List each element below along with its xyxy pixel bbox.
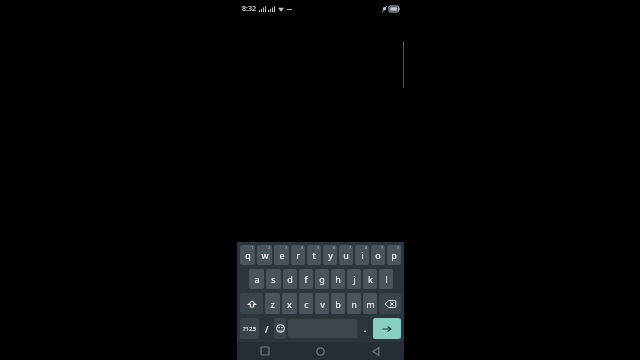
button[interactable]: j xyxy=(347,269,361,289)
button[interactable]: Recent apps xyxy=(237,342,292,360)
staticText: t xyxy=(312,249,316,261)
staticText: g xyxy=(319,273,325,285)
button[interactable]: 3 xyxy=(274,245,289,265)
staticText: 1 xyxy=(251,245,254,250)
button[interactable]: Emoji xyxy=(274,318,286,339)
staticText: u xyxy=(343,249,349,261)
staticText: w xyxy=(261,249,269,261)
staticText: ?123 xyxy=(243,325,256,333)
button[interactable]: Home xyxy=(292,342,348,360)
button[interactable]: k xyxy=(363,269,377,289)
staticText: s xyxy=(271,273,276,285)
button[interactable]: 0 xyxy=(387,245,401,265)
button[interactable]: 9 xyxy=(371,245,385,265)
staticText: z xyxy=(270,298,275,310)
staticText: b xyxy=(335,298,341,310)
staticText: 8:32 xyxy=(242,4,256,14)
button[interactable]: 6 xyxy=(323,245,337,265)
staticText: n xyxy=(351,298,357,310)
staticText: 4 xyxy=(301,245,304,250)
button[interactable]: v xyxy=(315,293,329,314)
button[interactable]: Backspace xyxy=(379,293,401,314)
staticText: a xyxy=(254,273,260,285)
staticText: p xyxy=(391,249,397,261)
button[interactable]: h xyxy=(331,269,345,289)
staticText: r xyxy=(296,249,300,261)
button[interactable]: Symbols xyxy=(240,318,259,339)
staticText: e xyxy=(279,249,285,261)
button[interactable]: 4 xyxy=(291,245,305,265)
staticText: y xyxy=(328,249,333,261)
staticText: j xyxy=(353,273,356,285)
button[interactable]: s xyxy=(266,269,281,289)
button[interactable]: 8 xyxy=(355,245,369,265)
button[interactable]: Slash xyxy=(261,318,272,339)
staticText: m xyxy=(366,298,375,310)
staticText: o xyxy=(375,249,381,261)
button[interactable]: Shift xyxy=(240,293,263,314)
staticText: 0 xyxy=(397,245,400,250)
staticText: 6 xyxy=(333,245,336,250)
button[interactable]: 1 xyxy=(240,245,255,265)
staticText: 9 xyxy=(381,245,384,250)
staticText: h xyxy=(335,273,341,285)
staticText: k xyxy=(368,273,373,285)
button[interactable]: 2 xyxy=(257,245,272,265)
staticText: 3 xyxy=(285,245,288,250)
staticText: q xyxy=(245,249,251,261)
button[interactable]: l xyxy=(379,269,393,289)
staticText: 5 xyxy=(317,245,320,250)
staticText: 8 xyxy=(365,245,368,250)
button[interactable]: 5 xyxy=(307,245,321,265)
button[interactable]: f xyxy=(299,269,313,289)
button[interactable]: z xyxy=(265,293,280,314)
staticText: / xyxy=(265,323,269,335)
button[interactable]: d xyxy=(283,269,297,289)
staticText: f xyxy=(304,273,308,285)
staticText: d xyxy=(287,273,293,285)
button[interactable]: a xyxy=(249,269,264,289)
button[interactable]: m xyxy=(363,293,377,314)
staticText: x xyxy=(287,298,292,310)
staticText: . xyxy=(364,323,367,334)
button[interactable]: 7 xyxy=(339,245,353,265)
button[interactable]: x xyxy=(282,293,297,314)
button[interactable]: n xyxy=(347,293,361,314)
button[interactable]: b xyxy=(331,293,345,314)
staticText: 7 xyxy=(349,245,352,250)
button[interactable]: Send xyxy=(373,318,401,339)
button[interactable]: c xyxy=(299,293,313,314)
button[interactable]: Back xyxy=(348,342,404,360)
staticText: l xyxy=(385,273,388,285)
staticText: i xyxy=(361,249,364,261)
staticText: 2 xyxy=(268,245,271,250)
button[interactable]: g xyxy=(315,269,329,289)
staticText: c xyxy=(304,298,309,310)
staticText: v xyxy=(320,298,325,310)
button[interactable]: Period xyxy=(359,318,371,339)
